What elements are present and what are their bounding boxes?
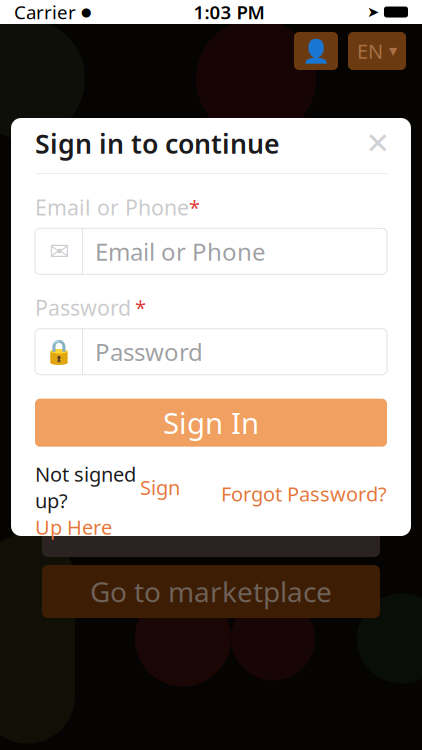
staticText: ● — [81, 5, 91, 19]
button[interactable]: Not signed up? — [35, 461, 195, 540]
staticText: ✉ — [49, 238, 69, 265]
staticText: Go to marketplace — [90, 573, 332, 610]
staticText: Up Here — [35, 514, 112, 540]
staticText: ✕ — [365, 127, 390, 160]
staticText: ▼ — [389, 45, 397, 57]
staticText: Sign In — [163, 403, 259, 442]
button[interactable]: Sign In — [35, 399, 387, 447]
button[interactable]: Forgot Password? — [221, 480, 387, 520]
staticText: * — [135, 294, 146, 321]
staticText: 1:03 PM — [193, 0, 264, 24]
staticText: Carrier — [14, 0, 76, 24]
button[interactable]: ✉ — [35, 228, 387, 274]
staticText: EN — [357, 38, 383, 64]
button[interactable]: Close — [361, 126, 395, 160]
staticText: ➤ — [367, 4, 379, 20]
staticText: Email or Phone — [95, 235, 266, 267]
button[interactable]: Go to marketplace — [42, 565, 380, 618]
staticText: Not signed up? — [35, 461, 136, 514]
staticText: Email or Phone — [35, 193, 189, 221]
staticText: Sign — [140, 474, 180, 501]
button[interactable]: Account — [294, 32, 338, 70]
staticText: Sign in to continue — [35, 126, 280, 161]
staticText: * — [189, 194, 200, 220]
button[interactable]: Language EN — [348, 32, 406, 70]
button[interactable]: 🔒 — [35, 329, 387, 375]
staticText: 👤 — [302, 38, 330, 64]
staticText: Forgot Password? — [221, 480, 387, 507]
staticText: 🔒 — [44, 338, 74, 365]
staticText: Password — [35, 293, 131, 322]
staticText: Password — [95, 336, 203, 368]
